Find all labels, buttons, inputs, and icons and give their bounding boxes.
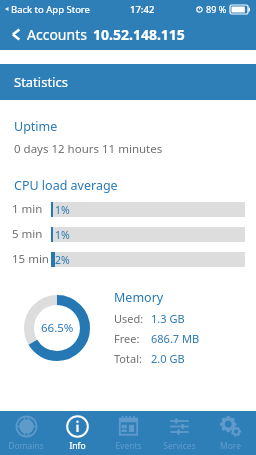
button[interactable]: Services bbox=[154, 411, 205, 455]
staticText: 5 min bbox=[12, 226, 43, 242]
staticText: Uptime bbox=[14, 118, 58, 135]
staticText: 2% bbox=[55, 253, 70, 267]
staticText: Used: bbox=[114, 311, 144, 326]
button[interactable]: Info bbox=[52, 411, 103, 455]
staticText: Free: bbox=[114, 331, 140, 346]
staticText: Info bbox=[69, 440, 86, 452]
button[interactable]: Events bbox=[103, 411, 154, 455]
staticText: 0 days 12 hours 11 minutes bbox=[14, 141, 163, 157]
staticText: Services bbox=[163, 440, 196, 452]
staticText: Statistics bbox=[14, 73, 68, 91]
staticText: 1% bbox=[55, 203, 70, 217]
staticText: 15 min bbox=[12, 251, 49, 267]
staticText: 10.52.148.115 bbox=[93, 25, 185, 44]
staticText: Domains bbox=[8, 440, 44, 452]
button[interactable]: Back bbox=[5, 23, 27, 45]
staticText: 686.7 MB bbox=[151, 331, 200, 346]
staticText: 66.5% bbox=[41, 320, 74, 336]
staticText: Memory bbox=[114, 289, 164, 306]
staticText: 89 % bbox=[206, 3, 227, 15]
staticText: 1 min bbox=[12, 201, 43, 217]
staticText: Total: bbox=[114, 351, 142, 366]
staticText: 17:42 bbox=[130, 3, 155, 16]
staticText: 1.3 GB bbox=[151, 311, 185, 326]
staticText: Events bbox=[115, 440, 142, 452]
staticText: More bbox=[220, 440, 241, 452]
staticText: Back to App Store bbox=[11, 3, 90, 16]
staticText: CPU load average bbox=[14, 177, 118, 194]
staticText: 1% bbox=[55, 228, 70, 242]
staticText: 2.0 GB bbox=[151, 351, 185, 366]
button[interactable]: Domains bbox=[0, 411, 52, 455]
button[interactable]: More bbox=[205, 411, 256, 455]
staticText: Accounts bbox=[27, 25, 87, 44]
